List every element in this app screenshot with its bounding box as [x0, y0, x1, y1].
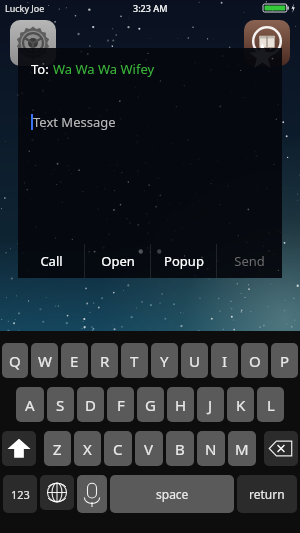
button[interactable]: K: [227, 387, 254, 422]
staticText: F: [117, 395, 125, 415]
staticText: O: [249, 351, 261, 371]
button[interactable]: Q: [2, 343, 28, 378]
staticText: K: [236, 395, 246, 415]
button[interactable]: X: [74, 431, 101, 466]
button[interactable]: Dictation: [77, 475, 107, 513]
button[interactable]: C: [104, 431, 132, 466]
button[interactable]: F: [107, 387, 134, 422]
button[interactable]: return: [237, 475, 297, 513]
button[interactable]: S: [47, 387, 74, 422]
staticText: R: [100, 351, 110, 371]
button[interactable]: Popup: [151, 244, 216, 278]
staticText: G: [145, 395, 156, 415]
button[interactable]: D: [77, 387, 104, 422]
staticText: V: [144, 439, 154, 459]
staticText: 123: [11, 487, 30, 502]
staticText: Wa Wa Wa Wifey: [53, 60, 155, 78]
staticText: P: [280, 351, 290, 371]
staticText: D: [85, 395, 96, 415]
button[interactable]: H: [167, 387, 194, 422]
staticText: B: [175, 439, 185, 459]
staticText: space: [156, 486, 189, 502]
button[interactable]: Send: [217, 244, 282, 278]
button[interactable]: T: [121, 343, 148, 378]
staticText: U: [189, 351, 200, 371]
staticText: L: [267, 395, 275, 415]
staticText: A: [25, 395, 35, 415]
staticText: Q: [9, 351, 21, 371]
button[interactable]: Cydia: [244, 20, 290, 66]
staticText: Y: [160, 351, 169, 371]
button[interactable]: Shift: [2, 431, 36, 466]
button[interactable]: 123: [3, 475, 37, 513]
staticText: Text Message: [33, 113, 116, 131]
staticText: 3:23 AM: [133, 2, 168, 14]
staticText: M: [235, 439, 249, 459]
staticText: Send: [234, 252, 265, 270]
staticText: Call: [40, 252, 63, 270]
staticText: return: [249, 486, 285, 502]
staticText: I: [222, 351, 228, 371]
button[interactable]: A: [16, 387, 44, 422]
button[interactable]: space: [110, 475, 234, 513]
button[interactable]: Z: [44, 431, 71, 466]
button[interactable]: J: [197, 387, 224, 422]
button[interactable]: B: [166, 431, 194, 466]
button[interactable]: Backspace: [264, 431, 298, 466]
button[interactable]: U: [181, 343, 208, 378]
button[interactable]: P: [271, 343, 298, 378]
staticText: Z: [53, 439, 62, 459]
button[interactable]: O: [241, 343, 268, 378]
button[interactable]: W: [31, 343, 58, 378]
staticText: Open: [101, 252, 135, 270]
staticText: X: [83, 439, 92, 459]
button[interactable]: L: [257, 387, 284, 422]
button[interactable]: Open: [85, 244, 150, 278]
button[interactable]: R: [91, 343, 118, 378]
button[interactable]: G: [137, 387, 164, 422]
button[interactable]: Change keyboard: [40, 475, 74, 510]
button[interactable]: I: [211, 343, 238, 378]
button[interactable]: M: [228, 431, 256, 466]
staticText: Lucky Joe: [5, 2, 45, 14]
button[interactable]: V: [135, 431, 163, 466]
button[interactable]: Call: [18, 244, 84, 278]
staticText: N: [205, 439, 217, 459]
button[interactable]: N: [197, 431, 225, 466]
staticText: To:: [31, 60, 53, 78]
staticText: C: [113, 439, 123, 459]
staticText: T: [130, 351, 139, 371]
staticText: Popup: [164, 252, 204, 270]
staticText: E: [70, 351, 79, 371]
button[interactable]: E: [61, 343, 88, 378]
staticText: S: [56, 395, 65, 415]
staticText: J: [208, 395, 213, 415]
staticText: H: [175, 395, 187, 415]
staticText: W: [38, 351, 52, 371]
button[interactable]: Y: [151, 343, 178, 378]
button[interactable]: Settings: [10, 20, 56, 66]
